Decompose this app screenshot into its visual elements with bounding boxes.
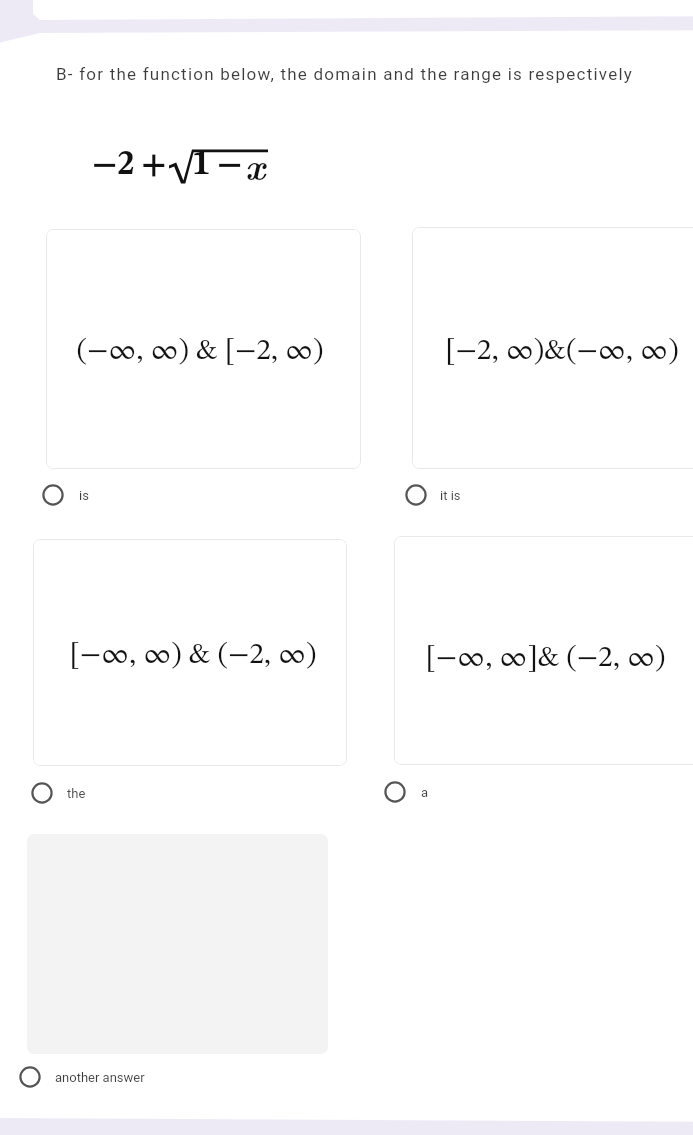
- staticText: [−∞, ∞]& (−2, ∞): [425, 644, 666, 674]
- staticText: B- for the function below, the domain an…: [56, 64, 634, 84]
- staticText: −2: [92, 148, 135, 182]
- other: square root: [168, 146, 278, 186]
- button[interactable]: [394, 536, 693, 765]
- button[interactable]: [412, 227, 693, 469]
- staticText: is: [79, 488, 89, 503]
- staticText: (−∞, ∞) & [−2, ∞): [76, 337, 324, 367]
- button[interactable]: is: [38, 480, 219, 510]
- staticText: 1: [193, 148, 210, 182]
- staticText: another answer: [55, 1070, 145, 1085]
- staticText: −: [217, 148, 243, 182]
- staticText: [−2, ∞)&(−∞, ∞): [445, 337, 679, 367]
- staticText: x: [245, 138, 266, 190]
- staticText: it is: [440, 488, 461, 503]
- button[interactable]: the: [27, 778, 207, 808]
- button[interactable]: [33, 539, 347, 766]
- button[interactable]: another answer: [15, 1062, 195, 1092]
- staticText: [−∞, ∞) & (−2, ∞): [69, 641, 317, 671]
- button[interactable]: a: [380, 777, 561, 807]
- staticText: the: [67, 786, 86, 801]
- staticText: +: [141, 148, 167, 182]
- staticText: a: [421, 785, 429, 800]
- button[interactable]: [46, 229, 361, 469]
- button[interactable]: it is: [401, 480, 580, 510]
